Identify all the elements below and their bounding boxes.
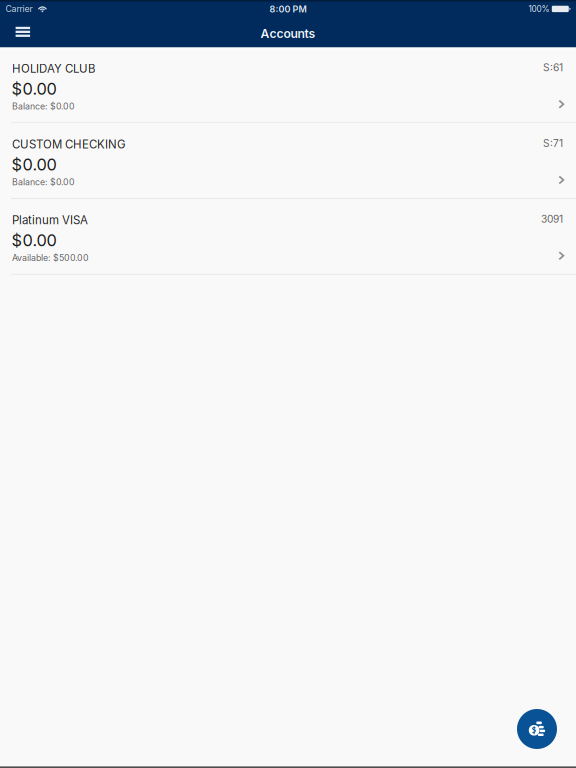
staticText: HOLIDAY CLUB: [12, 62, 96, 76]
button[interactable]: Menu: [0, 20, 576, 47]
staticText: 100%: [529, 4, 550, 14]
staticText: Accounts: [260, 26, 315, 41]
staticText: $0.00: [12, 230, 57, 250]
staticText: Balance: $0.00: [12, 101, 75, 112]
staticText: Carrier: [5, 4, 32, 14]
staticText: CUSTOM CHECKING: [12, 137, 126, 151]
staticText: 8:00 PM: [269, 4, 306, 15]
staticText: Available: $500.00: [12, 253, 89, 263]
staticText: S:61: [543, 61, 563, 74]
button[interactable]: HOLIDAY CLUB: [0, 47, 576, 123]
staticText: Platinum VISA: [12, 213, 88, 227]
button[interactable]: Platinum VISA: [0, 199, 576, 275]
staticText: S:71: [543, 137, 563, 149]
button[interactable]: CUSTOM CHECKING: [0, 123, 576, 199]
staticText: Balance: $0.00: [12, 177, 75, 187]
staticText: 3091: [541, 213, 563, 225]
staticText: $0.00: [12, 155, 57, 174]
button[interactable]: Make a payment: [517, 709, 557, 749]
staticText: $0.00: [12, 79, 57, 99]
